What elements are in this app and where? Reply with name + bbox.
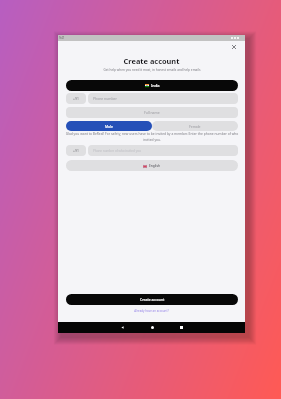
staticText: Create account (58, 56, 245, 66)
staticText: Phone number (93, 96, 117, 101)
staticText: India (151, 83, 160, 88)
button[interactable]: Female (152, 121, 238, 131)
staticText: +91 (73, 148, 79, 153)
staticText: Phone number of who invited you (93, 149, 141, 153)
button[interactable]: +91 (66, 145, 86, 156)
staticText: +91 (73, 96, 79, 101)
button[interactable]: Phone number of who invited you (88, 145, 238, 156)
staticText: Full name (144, 110, 160, 115)
button[interactable]: India (66, 80, 238, 91)
staticText: Female (189, 124, 201, 129)
staticText: Get help when you need it most, in hones… (66, 68, 238, 72)
staticText: Male (105, 124, 113, 129)
button[interactable]: Home (148, 323, 157, 332)
button[interactable]: Back (118, 323, 127, 332)
staticText: English (149, 164, 161, 168)
button[interactable]: Already have an account? (58, 309, 245, 313)
staticText: Create account (140, 297, 165, 302)
staticText: 9:41 (59, 36, 65, 40)
staticText: Glad you want to BeReal! For safety, new… (65, 131, 239, 142)
button[interactable]: Recents (177, 323, 186, 332)
button[interactable]: Phone number (88, 93, 238, 104)
button[interactable]: +91 (66, 93, 86, 104)
button[interactable]: Close (229, 42, 239, 52)
button[interactable]: Male (66, 121, 152, 131)
button[interactable]: Create account (66, 294, 238, 305)
button[interactable]: Full name (66, 107, 238, 118)
button[interactable]: English (66, 160, 238, 171)
